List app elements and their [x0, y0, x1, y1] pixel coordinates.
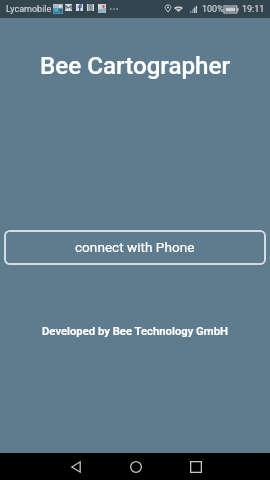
button[interactable]: Home — [122, 453, 149, 480]
staticText: Lycamobile — [6, 4, 52, 15]
button[interactable]: Back — [62, 453, 89, 480]
button[interactable]: connect with Phone — [4, 230, 266, 265]
button[interactable]: Recent apps — [182, 453, 209, 480]
staticText: 19:11 — [242, 4, 265, 15]
staticText: connect with Phone — [75, 239, 195, 255]
staticText: Bee Cartographer — [0, 52, 270, 80]
staticText: 100% — [202, 4, 224, 15]
staticText: Developed by Bee Technology GmbH — [0, 325, 270, 338]
